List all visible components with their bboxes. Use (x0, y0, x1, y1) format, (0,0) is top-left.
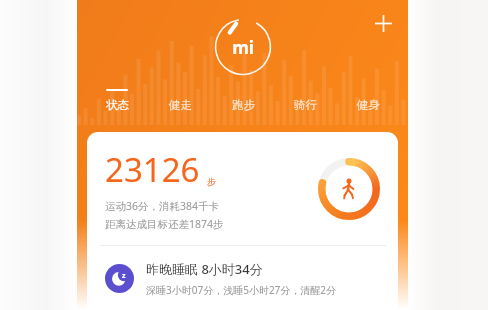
staticText: 距离达成目标还差1874步 (105, 217, 224, 231)
staticText: 健走 (169, 98, 192, 112)
staticText: 步 (207, 176, 216, 187)
staticText: z (122, 271, 126, 281)
staticText: 骑行 (294, 98, 317, 112)
staticText: 深睡3小时07分，浅睡5小时27分，清醒2分 (146, 283, 337, 297)
staticText: mi (232, 36, 254, 59)
button[interactable]: 状态 (91, 86, 143, 114)
staticText: 状态 (106, 98, 129, 112)
staticText: 运动36分，消耗384千卡 (105, 199, 220, 213)
staticText: 昨晚睡眠 8小时34分 (146, 260, 263, 278)
button[interactable]: Add (366, 6, 400, 40)
button[interactable]: 跑步 (217, 86, 269, 114)
staticText: 23126 (105, 147, 200, 192)
button[interactable]: 健身 (342, 86, 394, 114)
staticText: 健身 (357, 98, 380, 112)
button[interactable]: z (87, 246, 398, 310)
button[interactable]: 健走 (154, 86, 206, 114)
staticText: 跑步 (232, 98, 255, 112)
button[interactable]: 骑行 (279, 86, 331, 114)
